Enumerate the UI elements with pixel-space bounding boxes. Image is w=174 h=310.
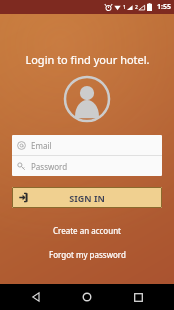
staticText: 1:55 [157, 2, 171, 12]
button[interactable]: Create an account [45, 222, 129, 239]
button[interactable]: Back [21, 284, 51, 310]
staticText: Password [31, 161, 68, 172]
staticText: Forgot my password [49, 249, 126, 260]
staticText: 2 [135, 4, 138, 11]
staticText: SIGN IN [29, 192, 145, 204]
button[interactable]: SIGN IN [12, 187, 162, 208]
button[interactable]: Recent apps [123, 284, 153, 310]
button[interactable]: Forgot my password [41, 246, 134, 263]
staticText: 1 [123, 4, 126, 11]
button[interactable]: Home [72, 284, 102, 310]
staticText: Create an account [53, 225, 121, 236]
button[interactable]: Password [12, 156, 162, 176]
staticText: Login to find your hotel. [25, 52, 150, 67]
staticText: Email [31, 140, 52, 151]
button[interactable]: Email [12, 135, 162, 155]
